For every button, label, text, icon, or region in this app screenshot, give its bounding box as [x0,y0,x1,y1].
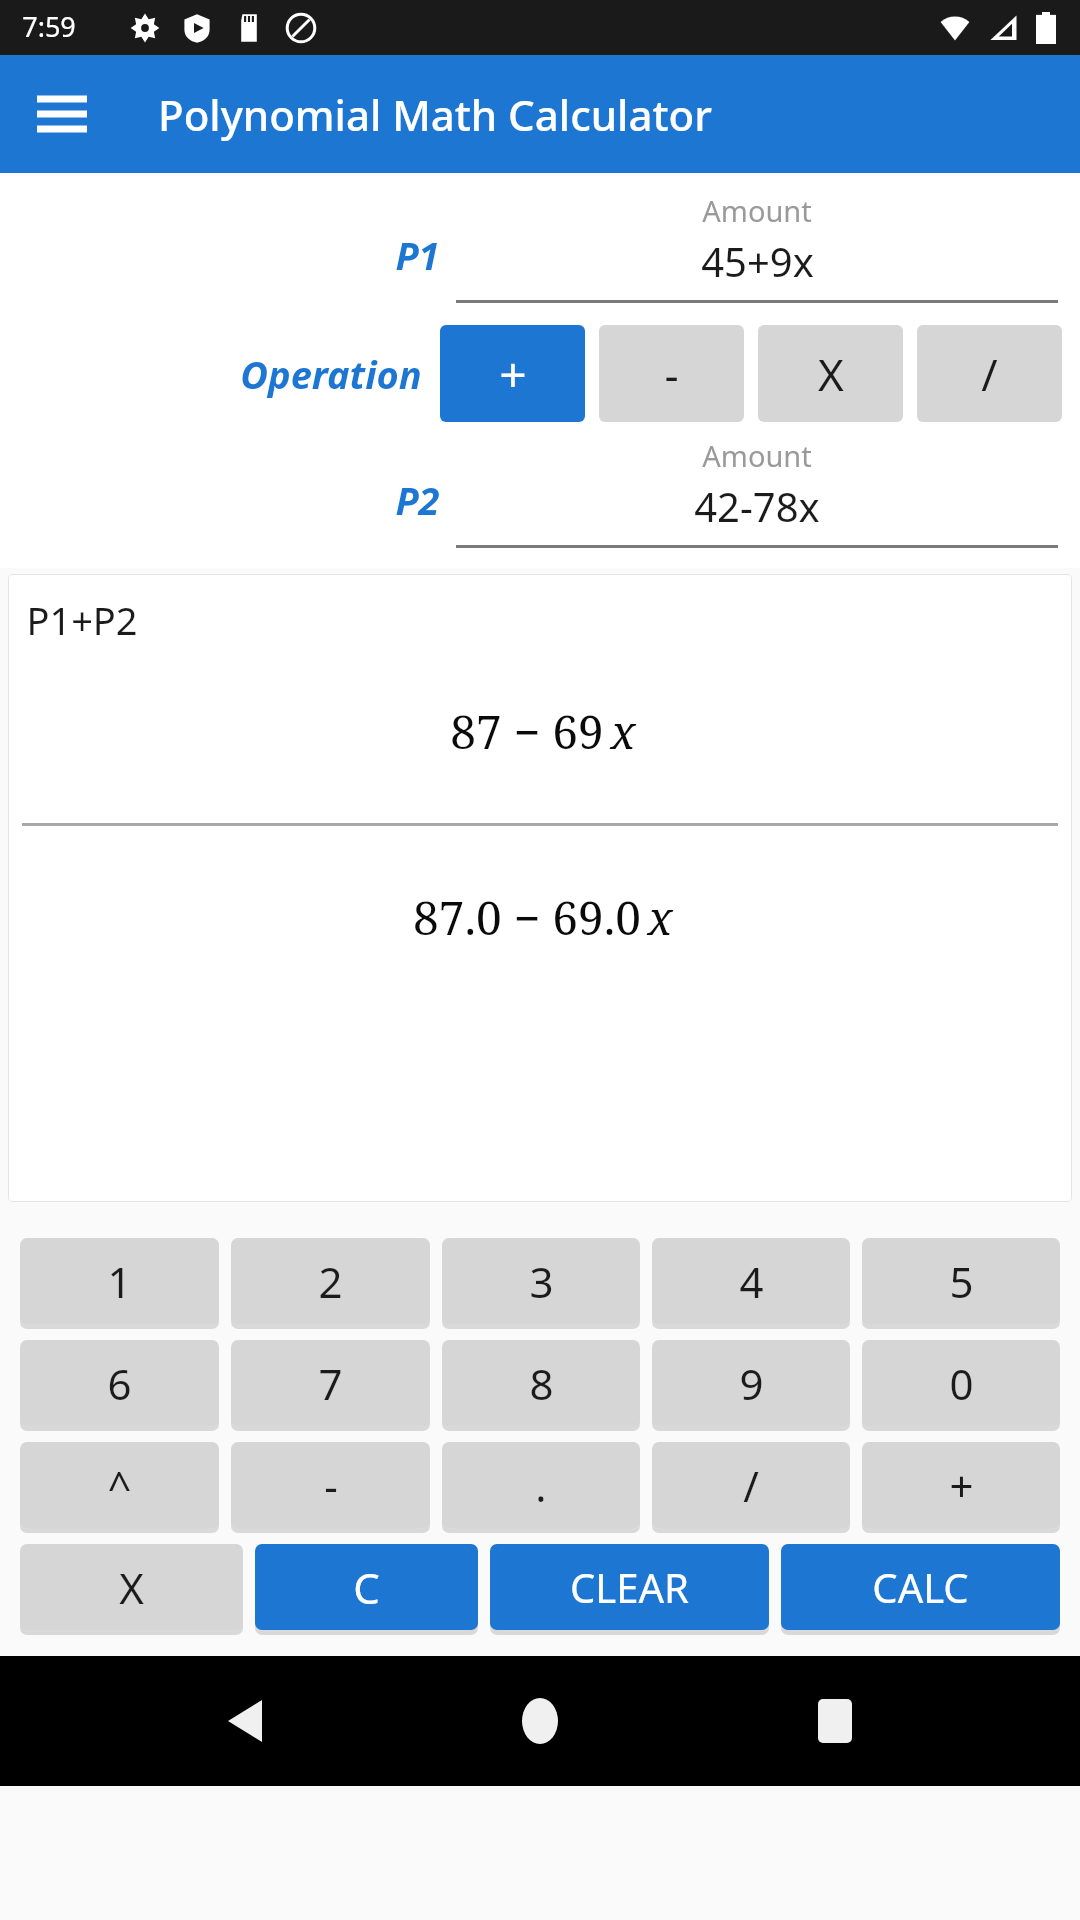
staticText: x [610,700,636,763]
staticText: 7:59 [22,8,76,45]
button[interactable]: 8 [442,1340,640,1426]
staticText: P2 [395,474,440,526]
button[interactable]: Open navigation menu [26,78,98,150]
button[interactable]: Amount [456,436,1058,548]
staticText: + [949,1457,974,1514]
button[interactable]: 1 [20,1238,219,1324]
staticText: C [353,1559,380,1616]
button[interactable]: C [255,1544,478,1630]
staticText: P1 [395,229,440,281]
button[interactable]: - [599,325,744,422]
button[interactable]: 4 [652,1238,850,1324]
staticText: 1 [107,1253,132,1310]
button[interactable]: Amount [456,191,1058,303]
staticText: . [535,1457,547,1514]
staticText: Amount [702,191,812,230]
staticText: 4 [739,1253,764,1310]
button[interactable]: / [652,1442,850,1528]
staticText: CALC [872,1560,969,1614]
staticText: 7 [318,1355,343,1412]
staticText: 2 [318,1253,343,1310]
staticText: P1+P2 [26,594,138,646]
staticText: 87.0 − 69.0 [407,886,647,949]
button[interactable]: 0 [862,1340,1060,1426]
button[interactable]: + [440,325,585,422]
staticText: 0 [949,1355,974,1412]
staticText: 45+9x [701,234,814,288]
button[interactable]: 6 [20,1340,219,1426]
staticText: - [664,344,679,404]
button[interactable]: 5 [862,1238,1060,1324]
button[interactable]: / [917,325,1062,422]
staticText: Operation [240,348,422,400]
button[interactable]: + [862,1442,1060,1528]
staticText: 6 [107,1355,132,1412]
staticText: - [324,1457,338,1514]
button[interactable]: 2 [231,1238,430,1324]
button[interactable]: Recent apps [785,1671,885,1771]
staticText: X [818,344,844,404]
button[interactable]: X [758,325,903,422]
staticText: + [499,341,527,406]
staticText: CLEAR [570,1560,689,1614]
staticText: Polynomial Math Calculator [158,86,712,143]
staticText: x [647,886,673,949]
button[interactable]: 3 [442,1238,640,1324]
staticText: 9 [739,1355,764,1412]
button[interactable]: CLEAR [490,1544,769,1630]
staticText: 87 − 69 [444,700,610,763]
staticText: 8 [529,1355,554,1412]
staticText: 5 [949,1253,974,1310]
button[interactable]: ^ [20,1442,219,1528]
button[interactable]: Home [490,1671,590,1771]
staticText: Amount [702,436,812,475]
staticText: X [119,1559,144,1616]
button[interactable]: . [442,1442,640,1528]
staticText: ^ [107,1457,132,1514]
button[interactable]: Back [195,1671,295,1771]
staticText: / [743,1457,759,1514]
staticText: / [981,344,998,404]
button[interactable]: 9 [652,1340,850,1426]
button[interactable]: - [231,1442,430,1528]
button[interactable]: 7 [231,1340,430,1426]
staticText: 42-78x [694,479,820,533]
button[interactable]: CALC [781,1544,1060,1630]
staticText: 3 [529,1253,554,1310]
button[interactable]: X [20,1544,243,1630]
